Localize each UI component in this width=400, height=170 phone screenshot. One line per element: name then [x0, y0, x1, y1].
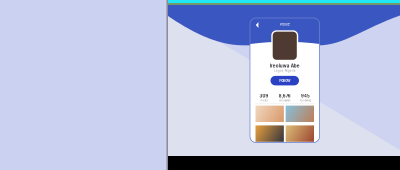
- button[interactable]: Follow: [270, 76, 299, 85]
- staticText: Ireoluwa Abe: [270, 63, 300, 68]
- staticText: Posts: [260, 99, 267, 102]
- button[interactable]: Back: [253, 19, 260, 29]
- staticText: 945: [301, 93, 310, 99]
- staticText: Following: [300, 99, 312, 102]
- staticText: Lagos, Nigeria: [274, 69, 296, 72]
- staticText: 8,676: [279, 93, 291, 99]
- staticText: Profile: [280, 22, 290, 27]
- staticText: Followers: [279, 99, 290, 102]
- staticText: 309: [259, 93, 268, 99]
- staticText: Follow: [279, 78, 290, 83]
